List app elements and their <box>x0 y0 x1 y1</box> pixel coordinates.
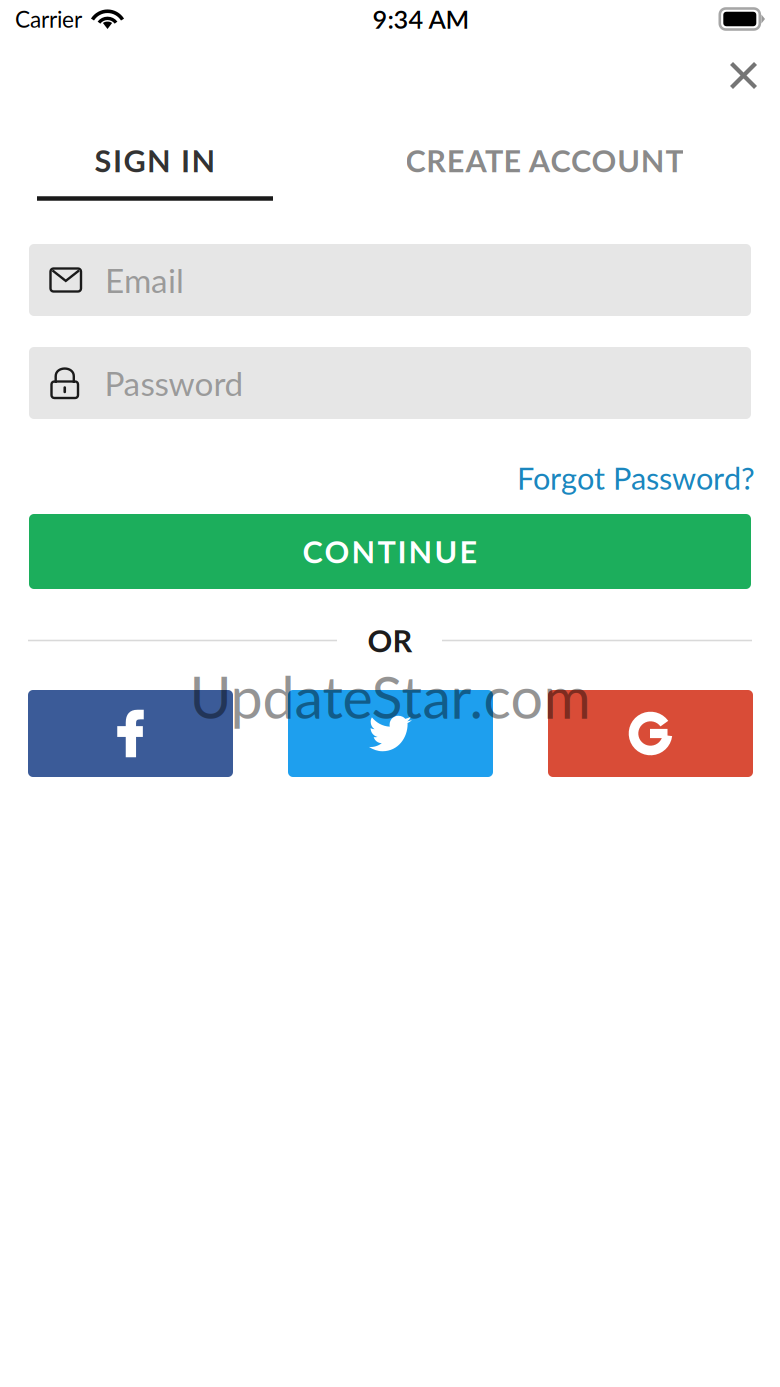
staticText: CREATE ACCOUNT <box>406 142 683 179</box>
staticText: Email <box>105 260 184 300</box>
button[interactable]: Password <box>29 347 751 419</box>
staticText: 9:34 AM <box>372 4 469 34</box>
button[interactable]: Forgot Password? <box>455 454 755 502</box>
button[interactable]: Email <box>29 244 751 316</box>
staticText: UpdateStar.com <box>189 662 590 731</box>
staticText: Password <box>104 363 243 403</box>
staticText: SIGN IN <box>94 142 215 179</box>
button[interactable]: Sign in with Google <box>548 690 753 777</box>
button[interactable]: CONTINUE <box>29 514 751 589</box>
button[interactable]: CREATE ACCOUNT <box>354 120 734 200</box>
button[interactable]: Sign in with Twitter <box>288 690 493 777</box>
button[interactable]: Sign in with Facebook <box>28 690 233 777</box>
button[interactable]: SIGN IN <box>0 120 310 200</box>
staticText: Carrier <box>15 5 82 33</box>
staticText: CONTINUE <box>302 533 477 570</box>
staticText: OR <box>367 622 412 659</box>
staticText: Forgot Password? <box>517 460 755 496</box>
button[interactable]: Close <box>712 45 774 105</box>
